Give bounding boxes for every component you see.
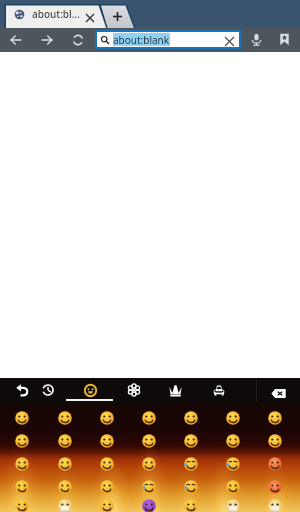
staticText: about:bl… <box>32 7 80 21</box>
button[interactable]: Objects <box>169 384 182 397</box>
button[interactable]: Emoji <box>0 406 43 429</box>
button[interactable]: Emoji <box>128 498 170 512</box>
button[interactable]: Smileys <box>84 384 97 397</box>
button[interactable]: Emoji <box>43 429 86 452</box>
button[interactable]: New tab <box>110 9 125 24</box>
button[interactable]: Emoji <box>43 452 86 475</box>
button[interactable]: Emoji <box>86 498 128 512</box>
button[interactable]: Emoji <box>43 498 86 512</box>
button[interactable]: Emoji <box>128 429 170 452</box>
button[interactable]: Emoji <box>212 406 254 429</box>
staticText: about:blank <box>113 33 170 46</box>
button[interactable]: Emoji <box>254 406 296 429</box>
button[interactable]: Emoji <box>170 406 212 429</box>
button[interactable]: Bookmarks <box>277 32 292 47</box>
button[interactable]: Emoji <box>254 498 296 512</box>
button[interactable]: Travel <box>213 384 225 396</box>
button[interactable]: Back <box>9 33 23 47</box>
button[interactable]: Recent <box>42 384 54 396</box>
button[interactable]: Emoji <box>254 452 296 475</box>
button[interactable]: Emoji <box>212 429 254 452</box>
button[interactable]: Emoji <box>128 475 170 498</box>
button[interactable]: Emoji <box>254 429 296 452</box>
button[interactable]: Emoji <box>170 429 212 452</box>
button[interactable]: Undo <box>16 384 28 396</box>
button[interactable]: Emoji <box>0 429 43 452</box>
button[interactable]: Emoji <box>86 452 128 475</box>
button[interactable]: Close tab <box>82 10 97 25</box>
button[interactable]: Emoji <box>86 406 128 429</box>
button[interactable]: Emoji <box>0 475 43 498</box>
button[interactable]: Emoji <box>170 452 212 475</box>
button[interactable]: Nature <box>128 384 140 396</box>
button[interactable]: Forward <box>40 33 54 47</box>
button[interactable]: Emoji <box>86 429 128 452</box>
button[interactable]: Reload <box>71 33 85 47</box>
button[interactable]: Backspace <box>271 386 286 401</box>
button[interactable]: Emoji <box>86 475 128 498</box>
button[interactable]: about:bl… <box>0 0 100 28</box>
button[interactable]: Emoji <box>170 498 212 512</box>
button[interactable]: Clear <box>223 35 235 47</box>
button[interactable]: Emoji <box>43 406 86 429</box>
button[interactable]: Emoji <box>212 452 254 475</box>
button[interactable]: Emoji <box>0 498 43 512</box>
button[interactable]: Emoji <box>254 475 296 498</box>
button[interactable]: Emoji <box>0 452 43 475</box>
button[interactable]: Emoji <box>212 475 254 498</box>
button[interactable]: Emoji <box>128 452 170 475</box>
button[interactable]: Voice search <box>249 32 264 47</box>
button[interactable]: about:blank <box>97 32 239 47</box>
button[interactable]: Emoji <box>212 498 254 512</box>
button[interactable]: Emoji <box>170 475 212 498</box>
button[interactable]: Emoji <box>128 406 170 429</box>
button[interactable]: Emoji <box>43 475 86 498</box>
